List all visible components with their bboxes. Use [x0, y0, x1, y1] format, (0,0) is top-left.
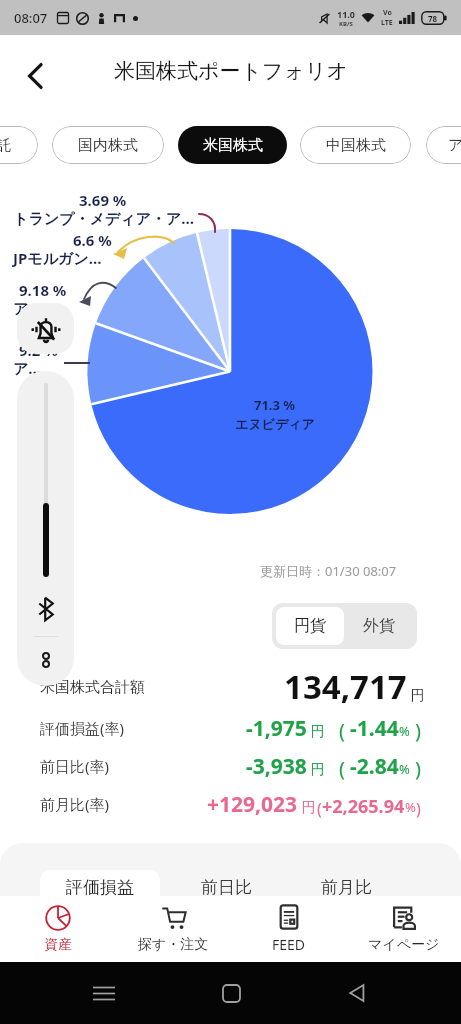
staticText: トランプ・メディア・ア…: [13, 208, 194, 228]
staticText: LTE: [381, 18, 393, 28]
staticText: (: [317, 798, 322, 820]
button[interactable]: Back: [13, 54, 57, 98]
staticText: 中国株式: [326, 136, 386, 155]
button[interactable]: Back: [335, 971, 379, 1015]
button[interactable]: 資産: [0, 896, 116, 962]
button[interactable]: Bluetooth: [30, 593, 62, 625]
staticText: 円: [407, 685, 425, 704]
staticText: マイページ: [368, 936, 440, 954]
staticText: 資産: [44, 936, 72, 954]
button[interactable]: 円貨: [276, 607, 344, 645]
staticText: 評価損益: [66, 877, 134, 898]
button[interactable]: FEED: [231, 896, 346, 962]
button[interactable]: マイページ: [346, 896, 461, 962]
staticText: +2,265.94: [322, 794, 405, 819]
staticText: (: [339, 755, 345, 782]
staticText: ): [415, 717, 421, 744]
button[interactable]: 評価損益: [40, 870, 160, 898]
button[interactable]: Mute: [17, 303, 74, 354]
staticText: -1,975: [246, 714, 307, 743]
staticText: 11.0: [337, 8, 355, 20]
staticText: +129,023: [207, 790, 298, 819]
staticText: 米国株式: [203, 136, 263, 155]
staticText: アセアン株式: [448, 136, 461, 155]
button[interactable]: 中国株式: [300, 126, 411, 164]
staticText: -3,938: [246, 752, 307, 781]
staticText: 前日比(率): [40, 756, 110, 776]
staticText: 米国株式合計額: [40, 678, 145, 697]
staticText: -1.44: [350, 714, 399, 743]
staticText: 米国株式ポートフォリオ: [114, 58, 348, 84]
staticText: 08:07: [14, 9, 48, 27]
button[interactable]: アセアン株式: [426, 126, 461, 164]
staticText: 前月比: [321, 877, 372, 898]
staticText: 9.18 %: [19, 280, 67, 300]
button[interactable]: 探す・注文: [116, 896, 231, 962]
staticText: 探す・注文: [138, 936, 209, 954]
staticText: 3.69 %: [79, 190, 127, 210]
staticText: 評価損益(率): [40, 718, 125, 738]
button[interactable]: 前日比: [176, 870, 276, 898]
button[interactable]: 外貨: [344, 607, 413, 645]
staticText: 国内株式: [78, 136, 138, 155]
staticText: ア…: [13, 298, 42, 318]
staticText: 6.6 %: [73, 230, 112, 250]
staticText: 78: [428, 13, 438, 24]
staticText: ア…: [13, 358, 42, 378]
staticText: %: [405, 798, 416, 816]
staticText: 134,717: [284, 664, 407, 709]
staticText: 前月比(率): [40, 794, 110, 814]
button[interactable]: More options: [31, 645, 61, 675]
staticText: 外貨: [363, 616, 395, 636]
button[interactable]: Recent apps: [82, 971, 126, 1015]
staticText: Vo: [383, 8, 392, 18]
staticText: (: [339, 717, 345, 744]
staticText: エヌビディア: [235, 416, 315, 432]
staticText: 投資信託: [0, 136, 12, 155]
staticText: -2.84: [350, 752, 399, 781]
button[interactable]: 米国株式: [178, 126, 287, 164]
staticText: 前日比: [201, 877, 252, 898]
staticText: ): [415, 755, 421, 782]
button[interactable]: 国内株式: [52, 126, 164, 164]
staticText: 更新日時：01/30 08:07: [260, 562, 397, 580]
staticText: %: [399, 722, 410, 740]
staticText: 9.2 %: [19, 340, 58, 360]
staticText: ): [416, 798, 421, 820]
staticText: 円貨: [294, 616, 326, 636]
button[interactable]: 投資信託: [0, 126, 38, 164]
staticText: FEED: [272, 935, 306, 954]
staticText: KB/S: [339, 20, 353, 28]
staticText: 71.3 %: [254, 396, 296, 414]
staticText: JPモルガン…: [13, 248, 102, 268]
button[interactable]: Home: [209, 971, 253, 1015]
button[interactable]: 前月比: [296, 870, 396, 898]
staticText: 円: [298, 797, 316, 816]
staticText: 円: [307, 759, 325, 778]
staticText: %: [399, 760, 410, 778]
staticText: 円: [307, 721, 325, 740]
